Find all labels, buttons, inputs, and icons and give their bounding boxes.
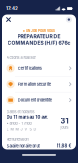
staticText: 11,88 € (56, 143, 71, 148)
staticText: COMMANDES (H/F) 676c (7, 40, 70, 46)
staticText: UN JOB POUR VOUS (26, 29, 55, 33)
staticText: PRÉPARATEUR DE (17, 33, 60, 39)
staticText: Certifications (18, 66, 42, 71)
staticText: Formation sécurité (18, 82, 51, 87)
staticText: Du 11 mars au 10 avr. (6, 115, 47, 120)
staticText: 17:42 (6, 6, 18, 11)
button[interactable]: Formation sécurité (2, 76, 76, 92)
staticText: Rémunération (6, 137, 28, 142)
staticText: • 8h00 - 17h00 (6, 121, 31, 126)
staticText: L M M J V S D (6, 127, 36, 131)
button[interactable]: Help (63, 14, 74, 25)
staticText: 31 (60, 116, 68, 125)
button[interactable]: Close (3, 15, 13, 25)
staticText: jours (60, 125, 68, 130)
button[interactable]: Certifications (2, 61, 76, 76)
button[interactable]: Document d'identité (2, 92, 76, 108)
staticText: Dates et horaires (6, 109, 34, 114)
staticText: Document d'identité (18, 98, 52, 102)
staticText: Salaire horaire brut (6, 143, 39, 148)
staticText: Actions à réaliser (6, 55, 35, 60)
